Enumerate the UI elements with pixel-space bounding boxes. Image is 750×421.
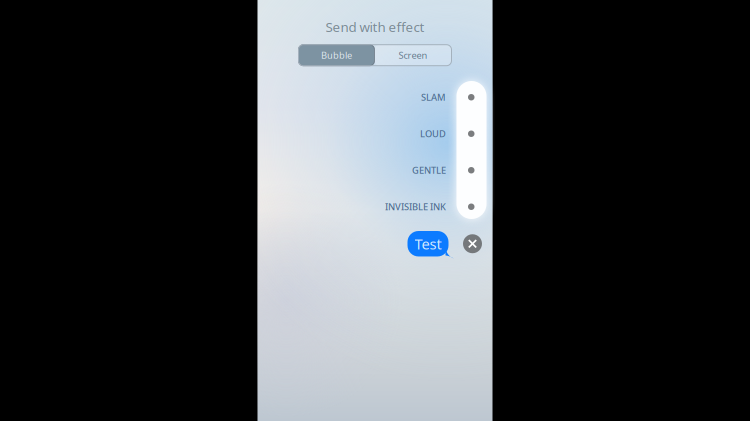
staticText: LOUD bbox=[420, 128, 446, 140]
button[interactable]: Close bbox=[461, 233, 483, 255]
staticText: Test bbox=[414, 234, 441, 253]
button[interactable]: GENTLE bbox=[257, 152, 492, 188]
button[interactable]: LOUD bbox=[257, 115, 492, 152]
button[interactable]: Screen bbox=[374, 45, 451, 66]
staticText: INVISIBLE INK bbox=[385, 201, 446, 213]
staticText: Send with effect bbox=[325, 18, 424, 36]
button[interactable]: INVISIBLE INK bbox=[257, 188, 492, 225]
button[interactable]: Bubble bbox=[298, 45, 374, 66]
staticText: GENTLE bbox=[412, 164, 446, 176]
button[interactable]: SLAM bbox=[257, 79, 492, 115]
staticText: Screen bbox=[398, 49, 427, 61]
staticText: SLAM bbox=[421, 91, 446, 103]
staticText: Bubble bbox=[321, 49, 352, 61]
